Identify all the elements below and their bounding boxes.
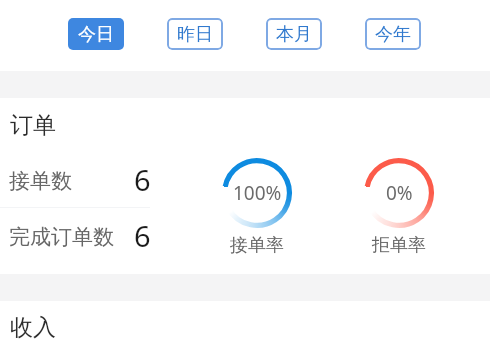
- staticText: 6: [134, 216, 151, 255]
- staticText: 6: [134, 160, 151, 199]
- staticText: 昨日: [177, 23, 213, 46]
- button[interactable]: 100%: [222, 158, 292, 257]
- staticText: 0%: [386, 180, 413, 206]
- button[interactable]: 昨日: [167, 18, 223, 50]
- staticText: 订单: [10, 111, 56, 140]
- button[interactable]: 接单数: [0, 164, 152, 204]
- staticText: 接单数: [9, 168, 72, 194]
- staticText: 拒单率: [372, 234, 426, 257]
- staticText: 完成订单数: [9, 224, 114, 250]
- staticText: 今日: [78, 23, 114, 46]
- staticText: 今年: [375, 23, 411, 46]
- button[interactable]: 今日: [68, 18, 124, 50]
- staticText: 本月: [276, 23, 312, 46]
- button[interactable]: 0%: [364, 158, 434, 257]
- button[interactable]: 今年: [365, 18, 421, 50]
- button[interactable]: 本月: [266, 18, 322, 50]
- staticText: 接单率: [230, 234, 284, 257]
- staticText: 100%: [233, 180, 282, 206]
- button[interactable]: 完成订单数: [0, 220, 152, 260]
- staticText: 收入: [10, 313, 56, 342]
